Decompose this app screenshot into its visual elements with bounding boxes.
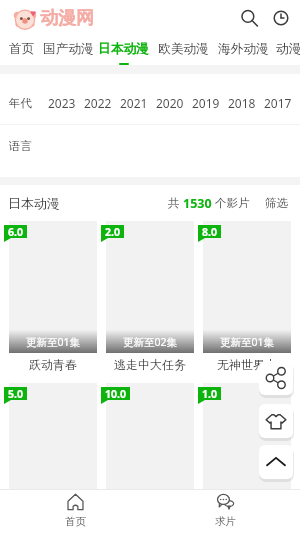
button[interactable]: 国产动漫 [43,30,98,63]
staticText: 更新至01集 [220,335,275,349]
button[interactable]: 欧美动漫 [158,30,218,63]
staticText: 首页 [9,41,35,57]
staticText: 2.0 [105,225,120,238]
staticText: 跃动青春 [29,357,77,372]
staticText: 首页 [65,515,86,528]
staticText: 逃走中大任务 [114,357,186,372]
staticText: 日本动漫 [8,195,60,211]
button[interactable]: 首页 [9,30,43,63]
staticText: 10.0 [105,387,126,400]
button[interactable]: 动漫 [276,30,300,63]
button[interactable]: 2019 [188,95,224,111]
button[interactable]: 5.0 [9,383,97,515]
button[interactable]: 筛选 [265,196,288,210]
staticText: 筛选 [265,196,288,210]
staticText: 5.0 [8,387,23,400]
staticText: 动漫 [276,41,300,57]
staticText: 年代 [9,96,32,110]
button[interactable]: 求片 [150,490,300,533]
staticText: 国产动漫 [43,41,94,57]
button[interactable]: 更新至01集 [203,221,291,375]
staticText: 6.0 [8,225,23,238]
staticText: 2022 [84,95,112,111]
staticText: 个影片 [212,195,250,211]
staticText: 欧美动漫 [158,41,209,57]
button[interactable]: 1.0 [203,383,291,515]
button[interactable]: Back to top [259,445,293,479]
button[interactable]: 2017 [260,95,296,111]
staticText: 8.0 [202,225,217,238]
staticText: 动漫网 [40,7,94,30]
staticText: 2019 [192,95,220,111]
staticText: 1.0 [202,387,217,400]
staticText: 更新至01集 [26,335,81,349]
staticText: 2021 [120,95,148,111]
staticText: 无神世界中 [217,357,277,372]
button[interactable]: Share [259,361,293,395]
button[interactable]: 日本动漫 [98,30,158,65]
staticText: 语言 [9,139,32,153]
staticText: 日本动漫 [98,41,149,57]
button[interactable]: Theme [259,404,293,438]
staticText: 2018 [228,95,256,111]
button[interactable]: 首页 [0,490,150,533]
button[interactable]: 2022 [80,95,116,111]
staticText: 共 [168,195,183,211]
staticText: 2017 [264,95,292,111]
staticText: 海外动漫 [218,41,269,57]
button[interactable]: 2023 [44,95,80,111]
staticText: 2023 [48,95,76,111]
button[interactable]: History [267,4,295,32]
staticText: 更新至02集 [123,335,178,349]
staticText: 2020 [156,95,184,111]
button[interactable]: 海外动漫 [218,30,276,63]
button[interactable]: 2020 [152,95,188,111]
button[interactable]: 10.0 [106,383,194,515]
staticText: 求片 [215,515,236,528]
button[interactable]: Search [235,4,263,32]
staticText: 1530 [183,195,212,212]
button[interactable]: 更新至02集 [106,221,194,375]
button[interactable]: 更新至01集 [9,221,97,375]
button[interactable]: 2021 [116,95,152,111]
button[interactable]: 2018 [224,95,260,111]
